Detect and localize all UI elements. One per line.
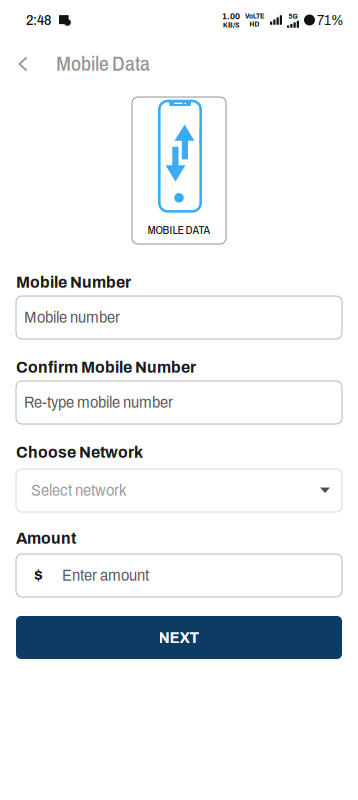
staticText: Amount — [16, 529, 76, 547]
staticText: MOBILE DATA — [147, 225, 210, 236]
button[interactable]: Re-type mobile number — [16, 381, 342, 424]
button[interactable]: Select network — [16, 469, 342, 512]
staticText: Confirm Mobile Number — [16, 358, 196, 376]
button[interactable]: Mobile number — [16, 296, 342, 339]
staticText: Mobile number — [24, 309, 120, 326]
staticText: HD — [249, 20, 259, 28]
staticText: 71% — [317, 12, 344, 28]
staticText: 2:48 — [26, 12, 51, 28]
staticText: Re-type mobile number — [24, 394, 173, 411]
button[interactable]: NEXT — [16, 616, 342, 659]
staticText: Select network — [31, 482, 127, 499]
button[interactable]: Back — [10, 45, 36, 83]
staticText: 5G — [288, 12, 297, 20]
staticText: Mobile Number — [16, 273, 131, 291]
staticText: KB/S — [223, 21, 239, 29]
staticText: Mobile Data — [56, 53, 150, 75]
staticText: Choose Network — [16, 443, 143, 461]
staticText: 1.00 — [222, 11, 240, 21]
staticText: $ — [34, 567, 42, 584]
staticText: Enter amount — [62, 567, 149, 584]
staticText: NEXT — [158, 628, 199, 647]
button[interactable]: $ — [16, 554, 342, 597]
staticText: VoLTE — [245, 12, 264, 20]
